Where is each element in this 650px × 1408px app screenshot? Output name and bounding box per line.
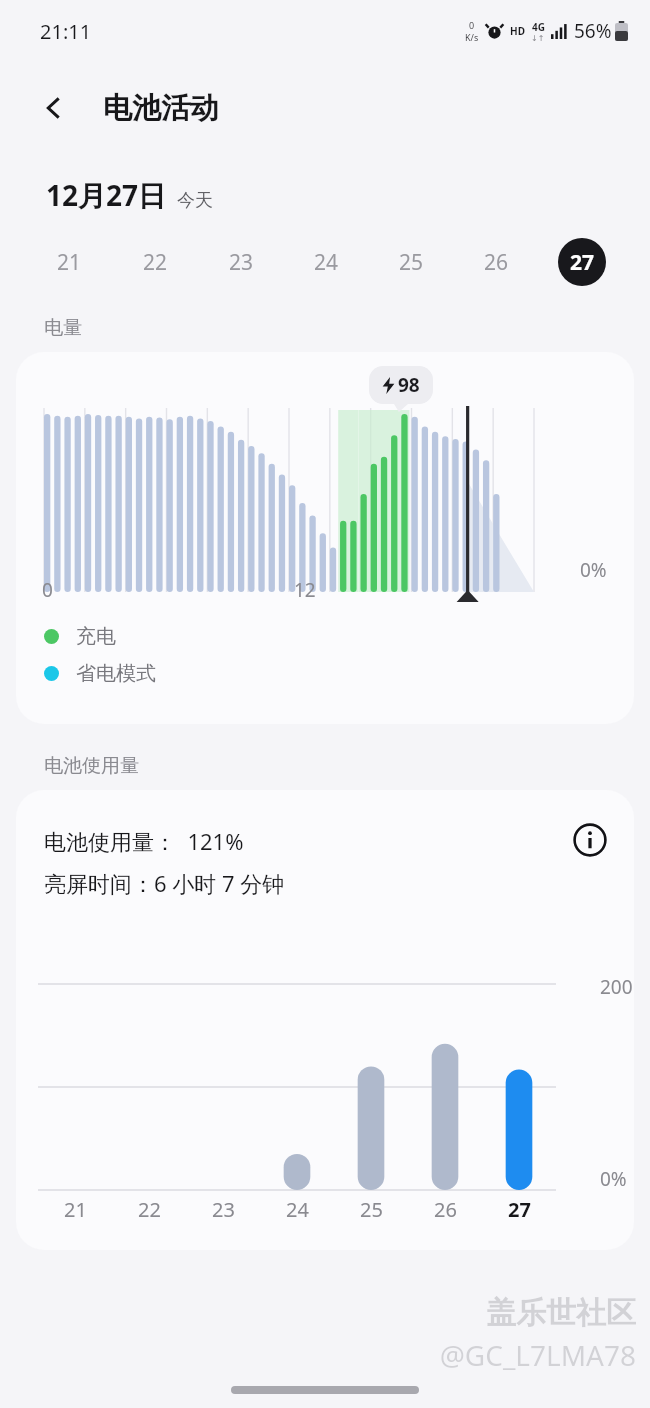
- staticText: 26: [484, 248, 509, 277]
- staticText: 电池使用量: [44, 754, 139, 778]
- staticText: 0%: [600, 1166, 627, 1192]
- staticText: 56%: [574, 18, 612, 44]
- button[interactable]: 22: [112, 234, 198, 290]
- staticText: 27: [570, 248, 595, 277]
- button[interactable]: Back: [26, 80, 82, 136]
- staticText: 省电模式: [76, 661, 156, 686]
- button[interactable]: 24: [284, 234, 369, 290]
- staticText: 24: [314, 248, 339, 277]
- staticText: 电池活动: [103, 90, 219, 127]
- button[interactable]: 26: [454, 234, 539, 290]
- staticText: 电量: [44, 316, 82, 340]
- staticText: 22: [138, 1196, 161, 1223]
- staticText: 200: [600, 974, 633, 1000]
- staticText: 22: [143, 248, 168, 277]
- button[interactable]: 23: [198, 234, 284, 290]
- staticText: 27: [508, 1196, 531, 1223]
- staticText: 充电: [76, 624, 116, 649]
- staticText: 电池使用量： 121%: [44, 826, 244, 856]
- staticText: K/s: [465, 31, 479, 43]
- button[interactable]: 27: [539, 234, 624, 290]
- staticText: @GC_L7LMA78: [439, 1336, 636, 1374]
- staticText: 亮屏时间：6 小时 7 分钟: [44, 868, 285, 898]
- staticText: 26: [434, 1196, 457, 1223]
- staticText: 25: [360, 1196, 383, 1223]
- button[interactable]: Info: [562, 812, 618, 868]
- staticText: 21:11: [40, 18, 92, 45]
- staticText: 0: [42, 577, 53, 603]
- staticText: 0%: [580, 557, 607, 583]
- staticText: 25: [399, 248, 424, 277]
- staticText: 4G: [532, 20, 545, 34]
- staticText: 今天: [177, 189, 213, 212]
- button[interactable]: 0%: [16, 352, 634, 724]
- staticText: 21: [57, 248, 82, 277]
- staticText: 24: [286, 1196, 309, 1223]
- button[interactable]: 21: [26, 234, 112, 290]
- staticText: 0: [469, 19, 475, 31]
- staticText: 98: [398, 372, 420, 398]
- staticText: 23: [229, 248, 254, 277]
- staticText: 21: [64, 1196, 87, 1223]
- button[interactable]: 25: [369, 234, 454, 290]
- staticText: HD: [510, 24, 525, 38]
- staticText: 23: [212, 1196, 235, 1223]
- staticText: ↓↑: [531, 34, 545, 43]
- staticText: 12: [294, 577, 316, 603]
- staticText: 12月27日: [46, 176, 167, 214]
- staticText: 盖乐世社区: [486, 1294, 636, 1332]
